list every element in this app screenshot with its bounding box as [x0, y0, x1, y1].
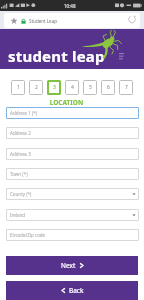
button[interactable]: County (*) — [6, 188, 139, 200]
staticText: LOCATION — [0, 98, 133, 107]
staticText: Eircode/Zip code — [10, 232, 46, 238]
staticText: Back — [69, 286, 84, 295]
staticText: Next — [61, 261, 76, 270]
staticText: 10:48 — [64, 3, 76, 9]
button[interactable]: 3 — [47, 80, 61, 95]
button[interactable]: Student Leap — [4, 13, 140, 28]
button[interactable]: Address 1 (*) — [6, 107, 139, 119]
button[interactable]: 7 — [119, 80, 133, 95]
staticText: Student Leap — [29, 18, 57, 24]
staticText: Address 1 (*) — [10, 110, 38, 116]
staticText: 6 — [107, 84, 110, 91]
staticText: 3 — [53, 84, 56, 91]
staticText: 2 — [35, 84, 38, 91]
staticText: Ireland — [10, 212, 26, 218]
staticText: Address 3 — [10, 151, 31, 157]
staticText: Town (*) — [10, 171, 28, 177]
button[interactable]: Ireland — [6, 209, 139, 221]
button[interactable]: 5 — [83, 80, 97, 95]
button[interactable]: 2 — [29, 80, 43, 95]
staticText: Address 2 — [10, 130, 31, 136]
button[interactable]: Reload page — [127, 16, 137, 26]
staticText: 5 — [89, 84, 92, 91]
button[interactable]: Next — [6, 256, 138, 275]
button[interactable]: Eircode/Zip code — [6, 229, 139, 241]
button[interactable]: 1 — [11, 80, 25, 95]
staticText: 4 — [71, 84, 74, 91]
staticText: 1 — [17, 84, 20, 91]
button[interactable]: Address 2 — [6, 127, 139, 139]
staticText: County (*) — [10, 191, 32, 197]
staticText: student leap — [8, 46, 105, 66]
button[interactable]: 4 — [65, 80, 79, 95]
button[interactable]: Address 3 — [6, 148, 139, 160]
button[interactable]: Town (*) — [6, 168, 139, 180]
staticText: 7 — [125, 84, 128, 91]
button[interactable]: 6 — [101, 80, 115, 95]
button[interactable]: Back — [6, 281, 138, 300]
